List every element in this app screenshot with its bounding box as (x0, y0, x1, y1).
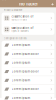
staticText: Lorem ipsum dolor (12, 87, 39, 91)
button[interactable]: Lorem ipsum dolor (2, 85, 54, 93)
staticText: Lorem ipsum (12, 96, 30, 99)
staticText: 9:41 (2, 0, 6, 1)
staticText: Lorem ipsum (12, 79, 30, 82)
staticText: objects in data (11, 18, 26, 21)
staticText: Info Tracker (18, 2, 37, 6)
button[interactable]: Lorem ipsum (2, 76, 54, 85)
staticText: Lorem ipsum (12, 43, 30, 47)
button[interactable]: Classification of (2, 13, 54, 24)
staticText: Lorem ipsum dolor (12, 70, 39, 73)
button[interactable]: Lorem ipsum (2, 58, 54, 67)
button[interactable]: Lorem ipsum (2, 94, 54, 100)
button[interactable]: Lorem ipsum dolor (2, 50, 54, 58)
button[interactable]: Lorem ipsum (2, 41, 54, 49)
staticText: Configuration Options (4, 37, 27, 40)
staticText: types of numbers (11, 30, 28, 32)
staticText: Privacy & Whatever (4, 9, 23, 12)
staticText: Manipulation of (11, 26, 33, 29)
staticText: Classification of (11, 15, 33, 18)
button[interactable]: Add (50, 2, 55, 6)
staticText: Lorem ipsum dolor (12, 52, 39, 55)
staticText: Lorem ipsum (12, 61, 30, 64)
button[interactable]: Lorem ipsum dolor (2, 67, 54, 76)
button[interactable]: Manipulation of (2, 24, 54, 35)
